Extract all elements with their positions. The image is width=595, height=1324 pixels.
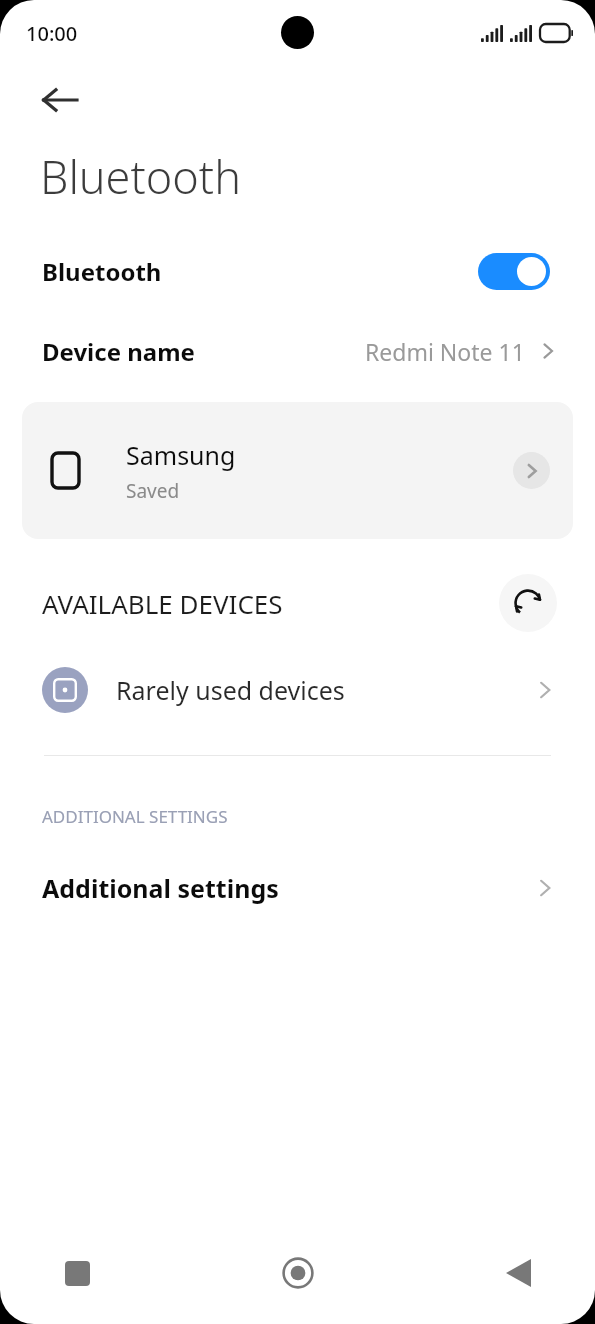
button[interactable]: Bluetooth on xyxy=(478,253,550,290)
staticText: Redmi Note 11 xyxy=(365,336,525,367)
button[interactable]: Additional settings xyxy=(0,862,595,914)
button[interactable]: Back xyxy=(397,1250,595,1324)
staticText: Bluetooth xyxy=(40,146,241,207)
staticText: Saved xyxy=(126,478,180,504)
button[interactable]: Samsung xyxy=(22,402,573,539)
staticText: Bluetooth xyxy=(42,255,162,288)
staticText: Rarely used devices xyxy=(116,673,345,707)
button[interactable]: Back xyxy=(30,70,90,130)
button[interactable]: Device settings xyxy=(513,452,550,489)
button[interactable]: Recents xyxy=(0,1250,199,1324)
staticText: Additional settings xyxy=(42,871,279,905)
staticText: Samsung xyxy=(126,438,236,472)
staticText: ADDITIONAL SETTINGS xyxy=(42,805,228,828)
staticText: AVAILABLE DEVICES xyxy=(42,586,283,621)
staticText: Device name xyxy=(42,335,195,368)
button[interactable]: Refresh xyxy=(499,574,557,632)
button[interactable]: Device name xyxy=(0,329,595,373)
button[interactable]: Bluetooth xyxy=(0,243,595,299)
button[interactable]: Home xyxy=(199,1250,397,1324)
button[interactable]: Rarely used devices xyxy=(0,662,595,718)
staticText: 10:00 xyxy=(26,20,78,47)
